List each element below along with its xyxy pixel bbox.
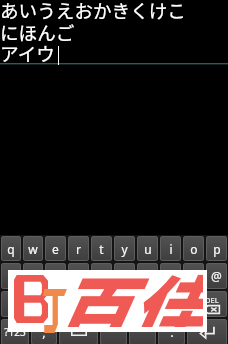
button[interactable]: y (114, 236, 135, 261)
staticText: w (28, 241, 38, 257)
staticText: k (167, 268, 174, 284)
button[interactable]: z (34, 291, 55, 317)
button[interactable]: h (114, 263, 135, 289)
staticText: v (110, 296, 117, 312)
button[interactable]: r (68, 236, 89, 261)
button[interactable]: i (160, 236, 181, 261)
button[interactable]: g (91, 263, 112, 289)
staticText: h (121, 268, 129, 284)
button[interactable]: Space (59, 319, 98, 344)
staticText: y (121, 241, 128, 257)
staticText: r (76, 241, 81, 257)
button[interactable]: o (183, 236, 204, 261)
staticText: . (170, 323, 174, 341)
staticText: u (144, 241, 152, 257)
button[interactable]: Language (129, 319, 156, 344)
button[interactable]: Enter (187, 319, 227, 344)
button[interactable]: p (206, 236, 227, 261)
button[interactable]: e (45, 236, 66, 261)
button[interactable]: n (149, 291, 170, 317)
button[interactable]: d (45, 263, 66, 289)
staticText: a (8, 268, 15, 284)
staticText: j (146, 268, 150, 284)
staticText: g (98, 268, 106, 284)
staticText: l (192, 268, 196, 284)
button[interactable]: c (80, 291, 101, 317)
staticText: z (42, 296, 48, 312)
button[interactable]: ?123 (1, 319, 29, 344)
button[interactable]: . (158, 319, 185, 344)
staticText: , (42, 323, 46, 341)
staticText: s (30, 268, 36, 284)
staticText: t (99, 241, 104, 257)
button[interactable]: v (103, 291, 124, 317)
button[interactable]: s (23, 263, 43, 289)
button[interactable]: t (91, 236, 112, 261)
staticText: 百佳 (51, 252, 203, 327)
staticText: p (213, 241, 221, 257)
staticText: e (52, 241, 59, 257)
button[interactable]: w (23, 236, 43, 261)
staticText: ?123 (4, 325, 26, 339)
button[interactable]: q (1, 236, 21, 261)
button[interactable]: Delete (195, 291, 227, 317)
button[interactable]: Emoji (100, 319, 127, 344)
staticText: i (169, 241, 173, 257)
staticText: あいうえおかきくけこ (0, 0, 186, 23)
button[interactable]: a (1, 263, 21, 289)
button[interactable]: l (183, 263, 204, 289)
staticText: q (7, 241, 15, 257)
button[interactable]: f (68, 263, 89, 289)
staticText: b (133, 296, 141, 312)
staticText: @ (211, 268, 222, 284)
staticText: DEL (205, 295, 219, 305)
button[interactable]: u (137, 236, 158, 261)
button[interactable]: b (126, 291, 147, 317)
staticText: c (88, 296, 94, 312)
staticText: f (76, 268, 81, 284)
button[interactable]: , (31, 319, 57, 344)
staticText: にほんご (0, 18, 75, 45)
button[interactable]: @ (206, 263, 227, 289)
staticText: d (52, 268, 60, 284)
button[interactable]: m (172, 291, 193, 317)
staticText: アイウ (0, 39, 55, 66)
button[interactable]: Shift (1, 291, 32, 317)
button[interactable]: j (137, 263, 158, 289)
staticText: n (156, 296, 164, 312)
staticText: m (177, 296, 189, 312)
staticText: o (190, 241, 198, 257)
button[interactable]: k (160, 263, 181, 289)
button[interactable]: x (57, 291, 78, 317)
